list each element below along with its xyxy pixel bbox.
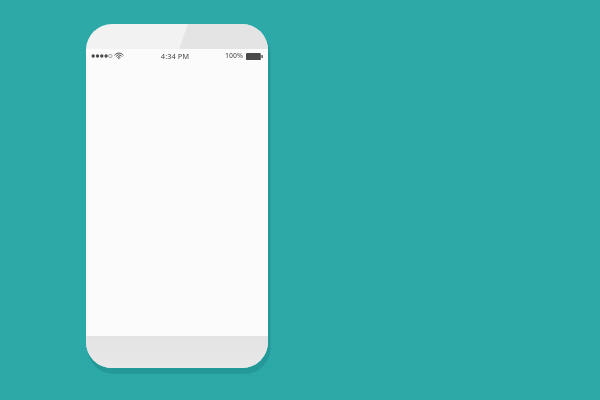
staticText: 4:34 PM — [125, 51, 225, 61]
other: Signal and Wi-Fi status — [91, 50, 125, 62]
staticText: 100% — [225, 51, 243, 61]
button[interactable]: Signal and Wi-Fi status — [86, 24, 268, 368]
other: Battery full — [246, 52, 263, 61]
